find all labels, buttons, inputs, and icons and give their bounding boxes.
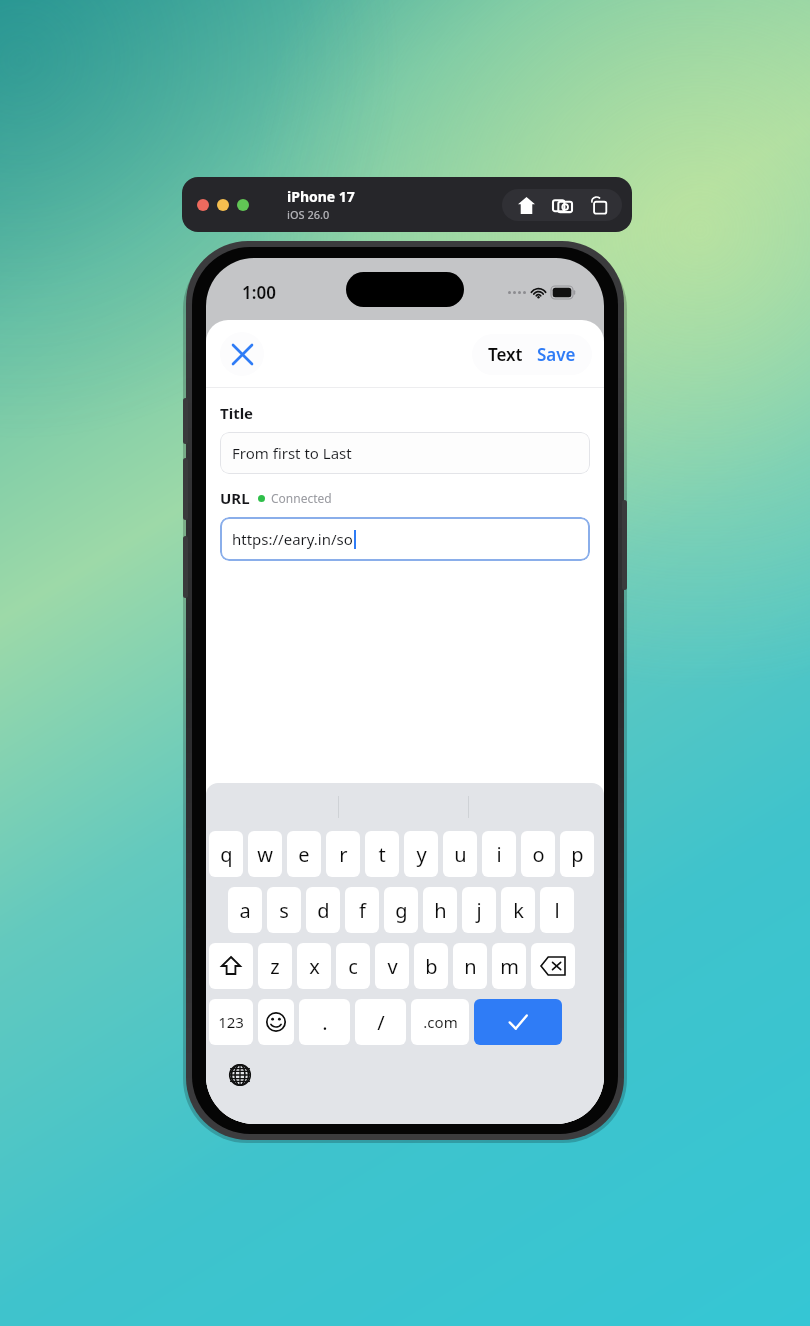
staticText: v xyxy=(387,953,398,980)
staticText: d xyxy=(317,897,330,924)
staticText: a xyxy=(239,897,251,924)
staticText: y xyxy=(416,841,427,868)
button[interactable]: m xyxy=(492,943,526,989)
button[interactable]: From first to Last xyxy=(220,432,590,474)
staticText: n xyxy=(464,953,477,980)
staticText: 123 xyxy=(218,1012,244,1032)
button[interactable]: u xyxy=(443,831,477,877)
button[interactable]: 123 xyxy=(209,999,253,1045)
button[interactable]: l xyxy=(540,887,574,933)
staticText: b xyxy=(425,953,438,980)
staticText: iOS 26.0 xyxy=(287,207,330,222)
staticText: / xyxy=(377,1009,385,1036)
staticText: p xyxy=(571,841,584,868)
staticText: e xyxy=(298,841,310,868)
staticText: . xyxy=(322,1009,328,1036)
staticText: Connected xyxy=(271,490,332,506)
button[interactable]: n xyxy=(453,943,487,989)
button[interactable]: window control xyxy=(217,199,229,211)
button[interactable]: / xyxy=(355,999,406,1045)
staticText: .com xyxy=(423,1012,458,1032)
button[interactable]: Rotate xyxy=(586,192,612,218)
button[interactable]: Close xyxy=(220,332,264,376)
staticText: q xyxy=(220,841,233,868)
button[interactable]: key xyxy=(209,943,253,989)
button[interactable]: r xyxy=(326,831,360,877)
staticText: Save xyxy=(537,343,576,366)
button[interactable]: p xyxy=(560,831,594,877)
button[interactable]: o xyxy=(521,831,555,877)
staticText: z xyxy=(270,953,280,980)
button[interactable]: h xyxy=(423,887,457,933)
staticText: From first to Last xyxy=(232,443,352,463)
staticText: s xyxy=(279,897,289,924)
staticText: https://eary.in/so xyxy=(232,529,353,549)
button[interactable]: b xyxy=(414,943,448,989)
button[interactable]: d xyxy=(306,887,340,933)
button[interactable]: y xyxy=(404,831,438,877)
staticText: h xyxy=(434,897,447,924)
button[interactable]: c xyxy=(336,943,370,989)
staticText: u xyxy=(454,841,467,868)
button[interactable]: q xyxy=(209,831,243,877)
button[interactable]: s xyxy=(267,887,301,933)
staticText: x xyxy=(309,953,320,980)
staticText: iPhone 17 xyxy=(287,187,355,206)
staticText: f xyxy=(359,897,366,924)
button[interactable]: e xyxy=(287,831,321,877)
button[interactable]: Screenshot xyxy=(549,192,575,218)
staticText: m xyxy=(500,953,519,980)
button[interactable]: i xyxy=(482,831,516,877)
button[interactable]: w xyxy=(248,831,282,877)
staticText: r xyxy=(339,841,348,868)
button[interactable]: x xyxy=(297,943,331,989)
button[interactable]: . xyxy=(299,999,350,1045)
button[interactable]: https://eary.in/so xyxy=(220,517,590,561)
button[interactable]: f xyxy=(345,887,379,933)
staticText: g xyxy=(395,897,408,924)
staticText: 1:00 xyxy=(242,281,276,304)
button[interactable]: g xyxy=(384,887,418,933)
button[interactable]: a xyxy=(228,887,262,933)
staticText: t xyxy=(378,841,386,868)
button[interactable]: Home xyxy=(513,192,539,218)
button[interactable]: t xyxy=(365,831,399,877)
button[interactable]: z xyxy=(258,943,292,989)
staticText: Title xyxy=(220,403,254,423)
staticText: i xyxy=(496,841,502,868)
button[interactable]: window control xyxy=(237,199,249,211)
button[interactable]: Switch keyboard xyxy=(224,1059,256,1091)
button[interactable]: window control xyxy=(197,199,209,211)
staticText: l xyxy=(554,897,560,924)
button[interactable]: v xyxy=(375,943,409,989)
staticText: Text xyxy=(488,343,523,366)
button[interactable]: Text xyxy=(488,343,523,366)
staticText: w xyxy=(257,841,273,868)
button[interactable]: .com xyxy=(411,999,469,1045)
staticText: k xyxy=(513,897,524,924)
button[interactable]: k xyxy=(501,887,535,933)
button[interactable]: key xyxy=(258,999,294,1045)
button[interactable]: Save xyxy=(537,343,576,366)
button[interactable]: key xyxy=(531,943,575,989)
staticText: j xyxy=(476,897,482,924)
button[interactable]: key xyxy=(474,999,562,1045)
staticText: o xyxy=(532,841,545,868)
staticText: c xyxy=(348,953,358,980)
staticText: URL xyxy=(220,488,250,508)
button[interactable]: j xyxy=(462,887,496,933)
